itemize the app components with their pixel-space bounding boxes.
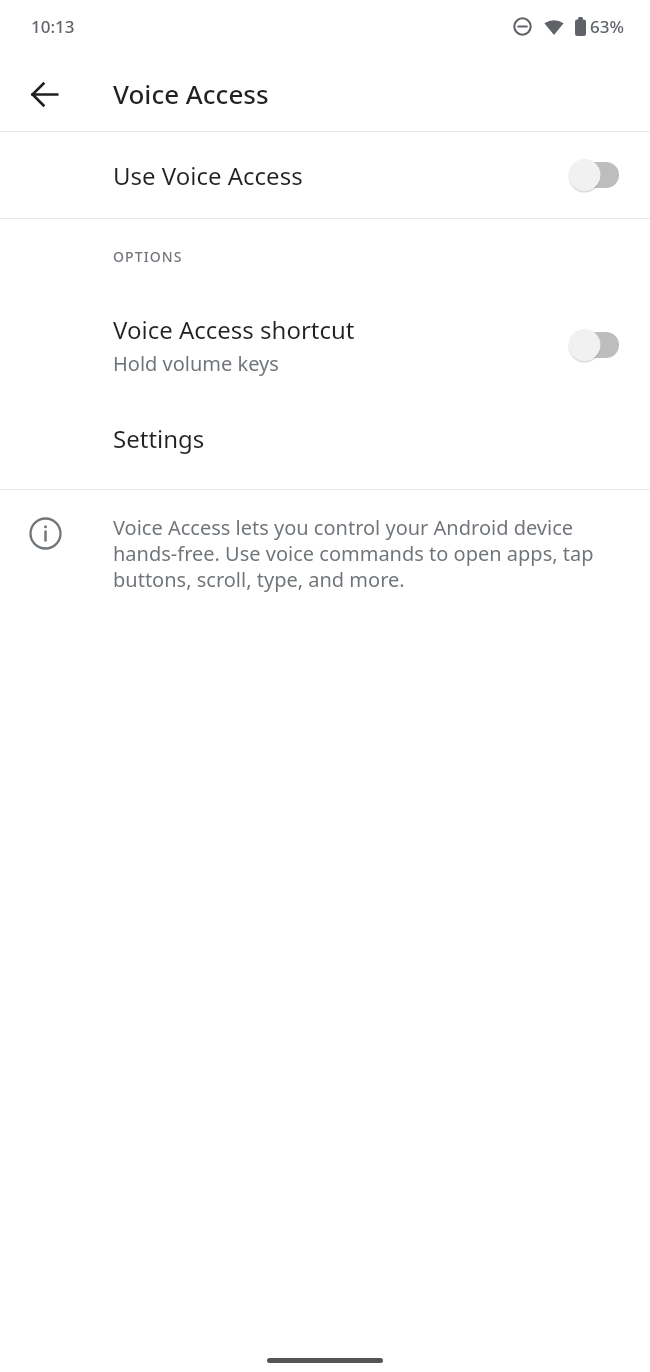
button[interactable]: Back: [14, 64, 74, 124]
staticText: Voice Access lets you control your Andro…: [113, 514, 622, 593]
staticText: Hold volume keys: [113, 350, 279, 377]
button[interactable]: Voice Access shortcut: [554, 321, 626, 369]
staticText: Voice Access: [113, 76, 269, 111]
button[interactable]: Use Voice Access: [554, 151, 626, 199]
staticText: OPTIONS: [113, 247, 183, 266]
staticText: 10:13: [31, 15, 75, 38]
button[interactable]: Settings: [0, 397, 650, 479]
other: Information: [26, 514, 64, 552]
button[interactable]: Use Voice Access: [0, 132, 650, 218]
staticText: Voice Access shortcut: [113, 313, 355, 346]
staticText: Settings: [113, 422, 205, 455]
button[interactable]: Voice Access shortcut: [0, 293, 650, 397]
staticText: 63%: [590, 15, 624, 38]
staticText: Use Voice Access: [113, 159, 303, 192]
